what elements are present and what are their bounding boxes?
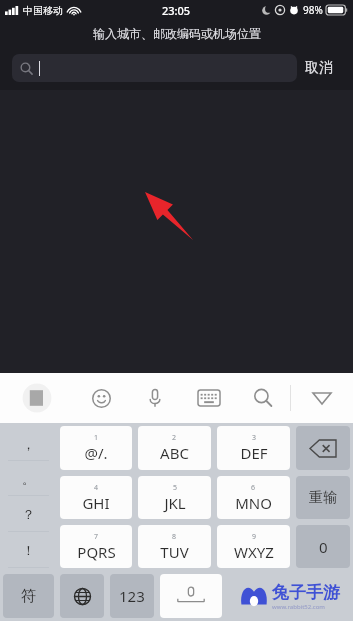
- staticText: 9: [252, 532, 257, 542]
- button[interactable]: [12, 54, 297, 82]
- staticText: 1: [94, 433, 99, 443]
- button[interactable]: 6: [217, 476, 290, 519]
- button[interactable]: ！: [3, 532, 54, 568]
- button[interactable]: ？: [3, 496, 54, 532]
- staticText: 取消: [305, 59, 333, 77]
- staticText: 重输: [309, 489, 337, 507]
- button[interactable]: 取消: [297, 55, 341, 81]
- staticText: MNO: [235, 493, 272, 513]
- button[interactable]: 4: [60, 476, 132, 519]
- staticText: 。: [22, 471, 35, 487]
- staticText: 输入城市、邮政编码或机场位置: [93, 26, 261, 41]
- button[interactable]: 。: [3, 461, 54, 496]
- staticText: 7: [94, 532, 99, 542]
- staticText: ABC: [160, 443, 189, 463]
- staticText: 98%: [303, 3, 323, 17]
- staticText: 0: [319, 537, 328, 557]
- button[interactable]: 7: [60, 525, 132, 568]
- button[interactable]: 符: [3, 574, 54, 618]
- button[interactable]: Hide keyboard: [291, 373, 353, 423]
- button[interactable]: Emoji: [74, 373, 128, 423]
- button[interactable]: Search: [236, 373, 290, 423]
- staticText: GHI: [82, 493, 110, 513]
- staticText: WXYZ: [234, 542, 274, 562]
- staticText: 6: [251, 483, 256, 493]
- button[interactable]: Change language: [60, 574, 104, 618]
- button[interactable]: 重输: [296, 476, 350, 519]
- staticText: 中国移动: [23, 4, 63, 17]
- button[interactable]: 0: [296, 525, 350, 568]
- button[interactable]: Input method: [0, 373, 74, 423]
- staticText: 8: [172, 532, 177, 542]
- staticText: 4: [94, 483, 99, 493]
- button[interactable]: 5: [138, 476, 211, 519]
- button[interactable]: Space: [160, 574, 222, 618]
- staticText: DEF: [240, 443, 268, 463]
- button[interactable]: 8: [138, 525, 211, 568]
- button[interactable]: Delete: [296, 426, 350, 470]
- button[interactable]: Voice: [128, 373, 182, 423]
- staticText: @/.: [84, 443, 108, 463]
- staticText: 符: [21, 587, 36, 606]
- button[interactable]: 123: [110, 574, 154, 618]
- button[interactable]: 9: [217, 525, 290, 568]
- staticText: 5: [173, 483, 178, 493]
- button[interactable]: 2: [138, 426, 211, 470]
- staticText: JKL: [164, 493, 186, 513]
- button[interactable]: Keyboard: [182, 373, 236, 423]
- staticText: 3: [252, 433, 257, 443]
- button[interactable]: 1: [60, 426, 132, 470]
- staticText: ！: [22, 542, 35, 558]
- button[interactable]: ，: [3, 426, 54, 461]
- staticText: ，: [22, 436, 35, 452]
- staticText: 兔子手游: [272, 582, 340, 603]
- staticText: 2: [172, 433, 177, 443]
- staticText: www.rabbit52.com: [272, 603, 325, 611]
- staticText: 23:05: [162, 3, 191, 18]
- staticText: 123: [119, 586, 145, 606]
- staticText: TUV: [160, 542, 189, 562]
- button[interactable]: 3: [217, 426, 290, 470]
- staticText: PQRS: [77, 542, 116, 562]
- staticText: ？: [22, 506, 35, 522]
